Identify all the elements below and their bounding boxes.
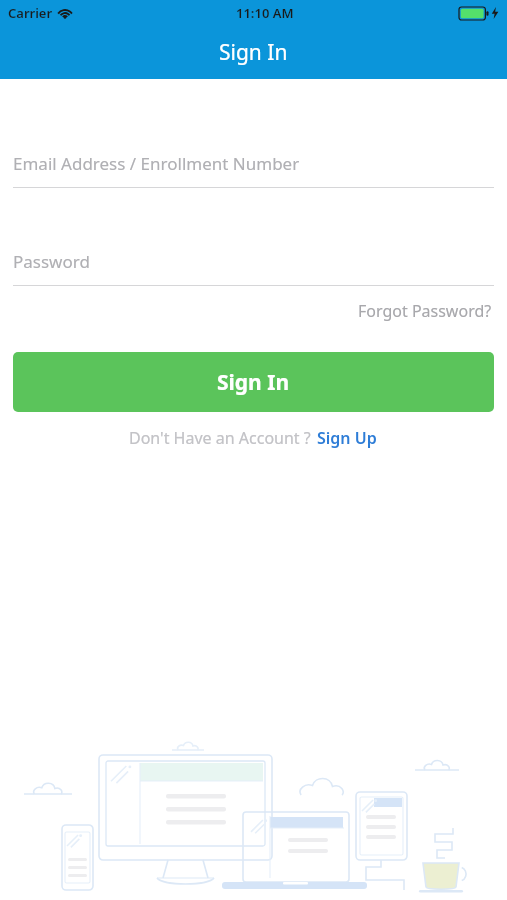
staticText: 11:10 AM xyxy=(236,4,294,22)
staticText: Sign In xyxy=(217,368,290,397)
staticText: Carrier xyxy=(8,4,53,22)
staticText: Password xyxy=(13,250,90,273)
staticText: Email Address / Enrollment Number xyxy=(13,152,300,175)
staticText: Sign Up xyxy=(317,427,377,449)
button[interactable]: Password xyxy=(13,237,494,286)
staticText: Don't Have an Account ? xyxy=(129,427,311,449)
button[interactable]: Email Address / Enrollment Number xyxy=(13,139,494,188)
button[interactable]: Forgot Password? xyxy=(356,296,494,326)
button[interactable]: Sign Up xyxy=(316,424,378,452)
staticText: Sign In xyxy=(219,38,288,67)
staticText: Forgot Password? xyxy=(358,300,492,322)
button[interactable]: Sign In xyxy=(13,352,494,412)
